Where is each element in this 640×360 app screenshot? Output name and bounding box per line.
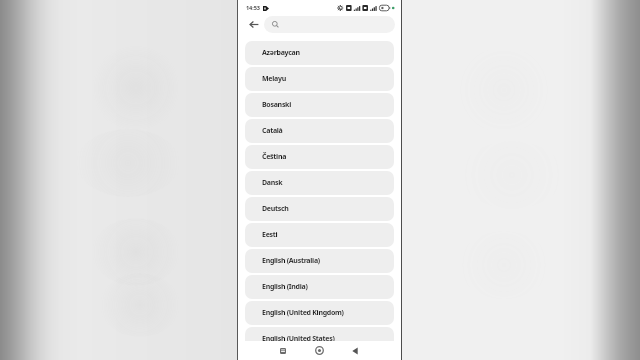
button[interactable]: English (United Kingdom)	[245, 301, 394, 325]
staticText: Dansk	[262, 178, 283, 188]
staticText: English (Australia)	[262, 256, 320, 266]
staticText: English (United States)	[262, 334, 335, 344]
button[interactable]: Čeština	[245, 145, 394, 169]
button[interactable]: Bosanski	[245, 93, 394, 117]
staticText: Azərbaycan	[262, 48, 300, 58]
button[interactable]: Recent apps	[273, 341, 293, 360]
staticText: Català	[262, 126, 283, 136]
staticText: English (United Kingdom)	[262, 308, 344, 318]
button[interactable]: Català	[245, 119, 394, 143]
button[interactable]: English (India)	[245, 275, 394, 299]
button[interactable]	[264, 16, 395, 33]
staticText: English (India)	[262, 282, 308, 292]
button[interactable]: Eesti	[245, 223, 394, 247]
button[interactable]: Deutsch	[245, 197, 394, 221]
button[interactable]: Azərbaycan	[245, 41, 394, 65]
staticText: Čeština	[262, 152, 287, 162]
button[interactable]: Home	[309, 341, 329, 360]
button[interactable]: Dansk	[245, 171, 394, 195]
staticText: Eesti	[262, 230, 278, 240]
button[interactable]: Back	[244, 16, 264, 33]
button[interactable]: English (Australia)	[245, 249, 394, 273]
button[interactable]: Melayu	[245, 67, 394, 91]
button[interactable]: English (United States)	[245, 327, 394, 351]
staticText: Deutsch	[262, 204, 289, 214]
button[interactable]: Back	[345, 341, 365, 360]
staticText: Bosanski	[262, 100, 291, 110]
staticText: Melayu	[262, 74, 286, 84]
staticText: 14:53	[246, 4, 260, 12]
